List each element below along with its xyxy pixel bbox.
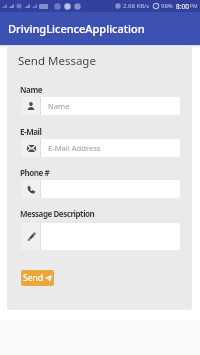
staticText: DrivingLicenceApplication	[8, 21, 145, 36]
button[interactable]	[21, 180, 180, 198]
staticText: Send Message	[18, 53, 96, 69]
button[interactable]: Name	[21, 97, 180, 115]
button[interactable]: Send	[21, 270, 54, 286]
staticText: E-Mail Address	[48, 143, 101, 153]
staticText: Name	[48, 101, 70, 111]
staticText: Message Description	[20, 208, 95, 219]
button[interactable]: DrivingLicenceApplication	[0, 12, 200, 45]
button[interactable]	[21, 223, 180, 250]
staticText: 8:00	[176, 2, 189, 11]
button[interactable]: E-Mail Address	[21, 139, 180, 157]
staticText: Phone #	[20, 167, 50, 178]
staticText: 98%	[161, 2, 173, 10]
staticText: Name	[20, 84, 43, 95]
staticText: E-Mail	[20, 126, 42, 137]
staticText: 2.68 KB/s	[123, 2, 150, 10]
staticText: Send	[23, 272, 43, 284]
staticText: PM	[190, 3, 198, 10]
